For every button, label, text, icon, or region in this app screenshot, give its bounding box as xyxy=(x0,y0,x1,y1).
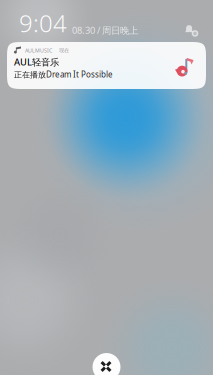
staticText: AULMUSIC xyxy=(25,47,52,54)
staticText: 08.30 / 周日晚上 xyxy=(72,24,138,36)
button[interactable]: Close xyxy=(92,353,120,375)
staticText: 正在播放Dream It Possible xyxy=(14,69,113,80)
staticText: 9:04 xyxy=(19,7,67,39)
staticText: 现在 xyxy=(59,47,69,54)
staticText: AUL轻音乐 xyxy=(14,56,59,68)
button[interactable]: AULMUSIC xyxy=(7,42,206,89)
